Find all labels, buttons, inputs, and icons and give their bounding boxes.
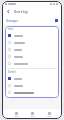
button[interactable] (5, 53, 59, 60)
button[interactable]: Recent (25, 109, 39, 119)
button[interactable]: Groups (2, 16, 62, 24)
staticText: Groups (6, 18, 18, 23)
staticText: Sort (8, 27, 14, 31)
button[interactable]: Browse (42, 109, 56, 119)
staticText: Sort by (14, 9, 29, 15)
button[interactable] (5, 82, 59, 89)
button[interactable] (5, 32, 59, 39)
button[interactable]: Files (9, 109, 23, 119)
button[interactable] (5, 46, 59, 53)
button[interactable] (5, 89, 59, 96)
button[interactable]: Back (5, 8, 12, 15)
button[interactable] (5, 60, 59, 67)
button[interactable] (5, 75, 59, 82)
button[interactable] (5, 39, 59, 46)
staticText: Order (8, 70, 16, 74)
